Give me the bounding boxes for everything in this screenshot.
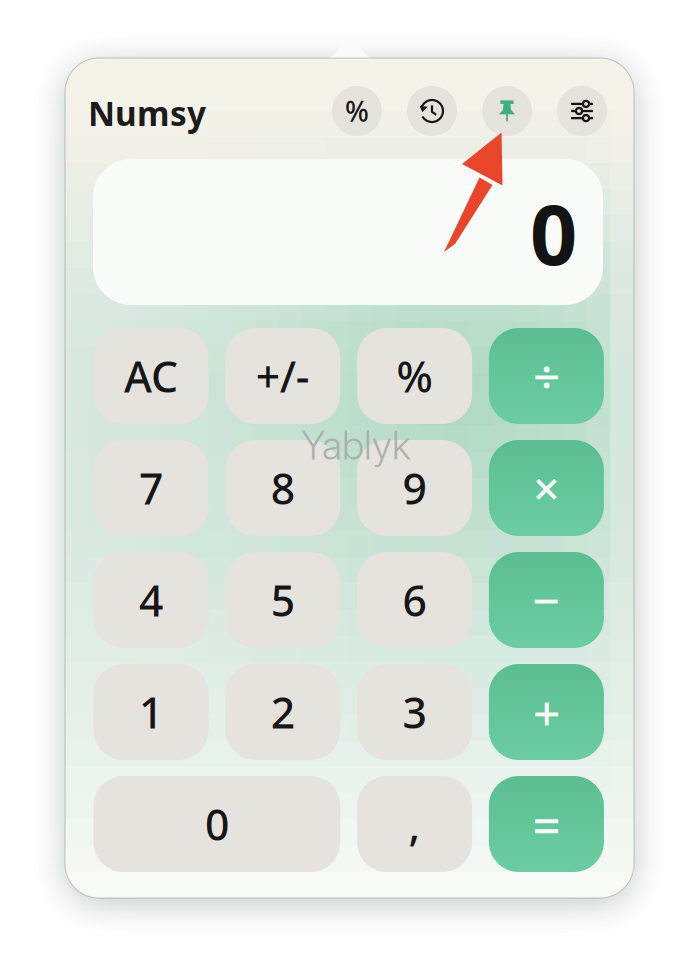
staticText: 0	[530, 178, 577, 288]
staticText: ×	[533, 457, 560, 519]
button[interactable]: 1	[93, 664, 208, 760]
button[interactable]: Pin window	[482, 86, 532, 136]
button[interactable]: ÷	[489, 328, 604, 424]
staticText: =	[532, 791, 560, 857]
staticText: %	[345, 92, 369, 130]
button[interactable]: 9	[357, 440, 472, 536]
staticText: +	[533, 680, 560, 744]
button[interactable]: %	[357, 328, 472, 424]
button[interactable]: =	[489, 776, 604, 872]
staticText: 7	[139, 460, 163, 516]
button[interactable]: +/-	[225, 328, 340, 424]
staticText: −	[532, 568, 560, 632]
button[interactable]: 0	[93, 776, 340, 872]
button[interactable]: 7	[93, 440, 208, 536]
button[interactable]: Settings	[557, 86, 607, 136]
button[interactable]: Percent	[332, 86, 382, 136]
button[interactable]: ×	[489, 440, 604, 536]
staticText: 5	[271, 572, 295, 628]
staticText: +/-	[256, 348, 310, 404]
staticText: %	[397, 348, 433, 404]
staticText: 9	[403, 460, 427, 516]
button[interactable]: 5	[225, 552, 340, 648]
button[interactable]: AC	[93, 328, 208, 424]
button[interactable]: 8	[225, 440, 340, 536]
staticText: 6	[403, 572, 427, 628]
staticText: 3	[403, 684, 427, 740]
staticText: ,	[409, 796, 421, 852]
staticText: Numsy	[88, 91, 206, 135]
button[interactable]: 3	[357, 664, 472, 760]
button[interactable]: 2	[225, 664, 340, 760]
staticText: 2	[271, 684, 295, 740]
staticText: ÷	[533, 344, 560, 408]
button[interactable]: History	[407, 86, 457, 136]
staticText: 8	[271, 460, 295, 516]
button[interactable]: 6	[357, 552, 472, 648]
staticText: AC	[124, 348, 178, 404]
button[interactable]: ,	[357, 776, 472, 872]
button[interactable]: 4	[93, 552, 208, 648]
staticText: Yablyk	[301, 422, 411, 469]
button[interactable]: +	[489, 664, 604, 760]
staticText: 4	[139, 572, 163, 628]
staticText: 1	[139, 684, 163, 740]
button[interactable]: −	[489, 552, 604, 648]
staticText: 0	[205, 796, 229, 852]
